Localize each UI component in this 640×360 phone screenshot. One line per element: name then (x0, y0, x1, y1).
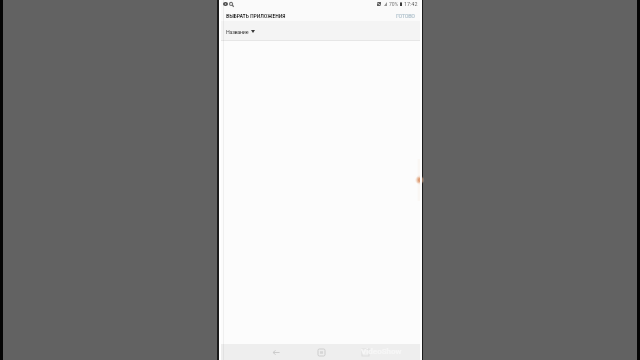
staticText: Название (226, 29, 249, 35)
staticText: 70% (389, 1, 399, 7)
staticText: VideoShow (361, 347, 402, 356)
button[interactable]: Back (263, 344, 289, 360)
staticText: ВЫБРАТЬ ПРИЛОЖЕНИЯ (226, 12, 286, 19)
button[interactable]: Home (308, 344, 334, 360)
staticText: ГОТОВО (396, 13, 415, 19)
button[interactable]: ГОТОВО (389, 11, 422, 21)
button[interactable]: Название (219, 21, 422, 40)
staticText: 17:42 (404, 1, 418, 7)
button[interactable]: Recents (352, 344, 378, 360)
